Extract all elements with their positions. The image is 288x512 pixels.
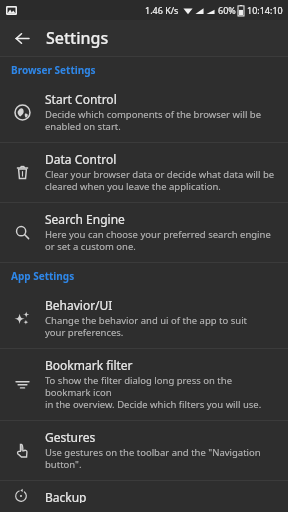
staticText: Browser Settings — [11, 63, 96, 77]
staticText: 60% — [218, 4, 236, 16]
staticText: Gestures — [45, 429, 96, 445]
button[interactable]: Back — [6, 22, 38, 54]
staticText: Backup — [45, 489, 87, 503]
staticText: Use gestures on the toolbar and the "Nav… — [45, 446, 280, 471]
staticText: Clear your browser data or decide what d… — [45, 168, 275, 193]
button[interactable]: Behavior/UI — [0, 289, 288, 348]
button[interactable]: Start Control — [0, 83, 288, 142]
staticText: Bookmark filter — [45, 357, 133, 373]
staticText: Start Control — [45, 91, 117, 107]
button[interactable]: Search Engine — [0, 203, 288, 262]
staticText: App Settings — [11, 269, 75, 283]
staticText: To show the filter dialog long press on … — [45, 374, 280, 411]
staticText: Here you can choose your preferred searc… — [45, 228, 271, 253]
staticText: Settings — [46, 27, 109, 49]
button[interactable]: Bookmark filter — [0, 349, 288, 420]
button[interactable]: Backup — [0, 481, 288, 512]
button[interactable]: Gestures — [0, 421, 288, 480]
staticText: Search Engine — [45, 211, 125, 227]
staticText: Behavior/UI — [45, 297, 113, 313]
staticText: Data Control — [45, 151, 117, 167]
button[interactable]: Data Control — [0, 143, 288, 202]
staticText: Change the behavior and ui of the app to… — [45, 314, 248, 339]
staticText: Decide which components of the browser w… — [45, 108, 262, 133]
staticText: 1.46 K/s — [145, 4, 179, 16]
staticText: 10:14:10 — [247, 4, 283, 16]
